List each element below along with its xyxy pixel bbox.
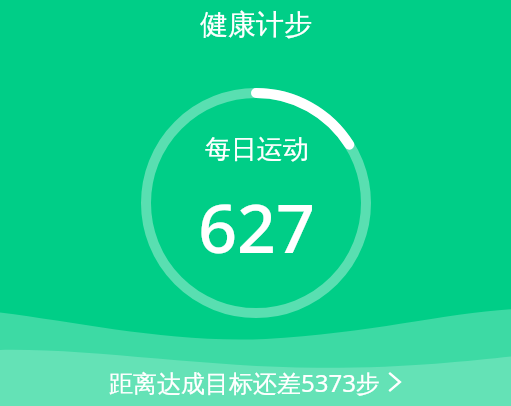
staticText: 627 [198, 180, 315, 273]
staticText: 每日运动 [205, 133, 309, 166]
button[interactable]: 距离达成目标还差5373步 [0, 358, 511, 406]
staticText: 健康计步 [200, 7, 312, 42]
staticText: 距离达成目标还差5373步 [109, 366, 380, 399]
other: View details [388, 371, 402, 393]
